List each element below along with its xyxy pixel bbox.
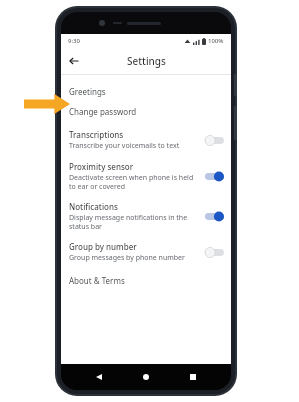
staticText: Change password xyxy=(69,106,137,117)
button[interactable]: Notifications xyxy=(61,196,231,236)
staticText: Display message notifications in the sta… xyxy=(69,213,199,231)
button[interactable]: Back xyxy=(65,52,83,70)
staticText: Transcriptions xyxy=(69,129,124,140)
staticText: Transcribe your voicemails to text xyxy=(69,141,180,151)
button[interactable]: Recent apps xyxy=(184,368,202,386)
button[interactable]: About & Terms xyxy=(61,270,231,290)
button[interactable]: Back xyxy=(90,368,108,386)
staticText: Notifications xyxy=(69,201,118,212)
staticText: Proximity sensor xyxy=(69,161,134,172)
staticText: Group messages by phone number xyxy=(69,253,185,263)
button[interactable]: Home xyxy=(137,368,155,386)
staticText: Greetings xyxy=(69,86,106,97)
staticText: Settings xyxy=(127,54,166,68)
button[interactable]: Off xyxy=(205,247,224,258)
button[interactable]: Greetings xyxy=(61,81,231,101)
button[interactable]: Group by number xyxy=(61,236,231,268)
button[interactable]: On xyxy=(205,211,224,222)
staticText: 9:30 xyxy=(68,37,80,45)
button[interactable]: On xyxy=(205,171,224,182)
staticText: About & Terms xyxy=(69,275,125,286)
button[interactable]: Off xyxy=(205,135,224,146)
button[interactable]: Proximity sensor xyxy=(61,156,231,196)
staticText: 100% xyxy=(208,37,224,45)
staticText: Group by number xyxy=(69,241,137,252)
staticText: Deactivate screen when phone is held to … xyxy=(69,173,199,191)
button[interactable]: Transcriptions xyxy=(61,124,231,156)
button[interactable]: Change password xyxy=(61,101,231,121)
